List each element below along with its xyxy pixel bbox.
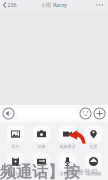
button[interactable]: 视频通话 — [54, 126, 80, 149]
button[interactable]: 照片 — [2, 126, 28, 149]
staticText: 语音输入 — [59, 171, 75, 176]
staticText: 我的收藏 — [85, 171, 101, 176]
staticText: 拍摄 — [37, 144, 45, 149]
staticText: 照片 — [11, 144, 19, 149]
button[interactable]: 红包 — [2, 153, 28, 176]
button[interactable]: Voice input — [3, 108, 14, 119]
staticText: 视频通话 — [59, 144, 75, 149]
button[interactable]: 转账 — [28, 153, 54, 176]
staticText: 检验号码 — [70, 168, 98, 176]
button[interactable]: More functions — [94, 108, 105, 119]
button[interactable]: 236 — [0, 0, 17, 10]
button[interactable]: 我的收藏 — [80, 153, 106, 176]
button[interactable]: 语音输入 — [54, 153, 80, 176]
staticText: 频通话】按 — [0, 162, 80, 180]
staticText: 236 — [8, 1, 17, 9]
button[interactable]: 位置 — [80, 126, 106, 149]
staticText: 小雨 Rainy — [41, 1, 67, 9]
button[interactable]: 拍摄 — [28, 126, 54, 149]
staticText: 转账 — [37, 171, 45, 176]
staticText: 红包 — [11, 171, 19, 176]
staticText: 位置 — [89, 144, 97, 149]
button[interactable]: Emoji — [80, 108, 91, 119]
button[interactable]: More — [96, 1, 108, 9]
